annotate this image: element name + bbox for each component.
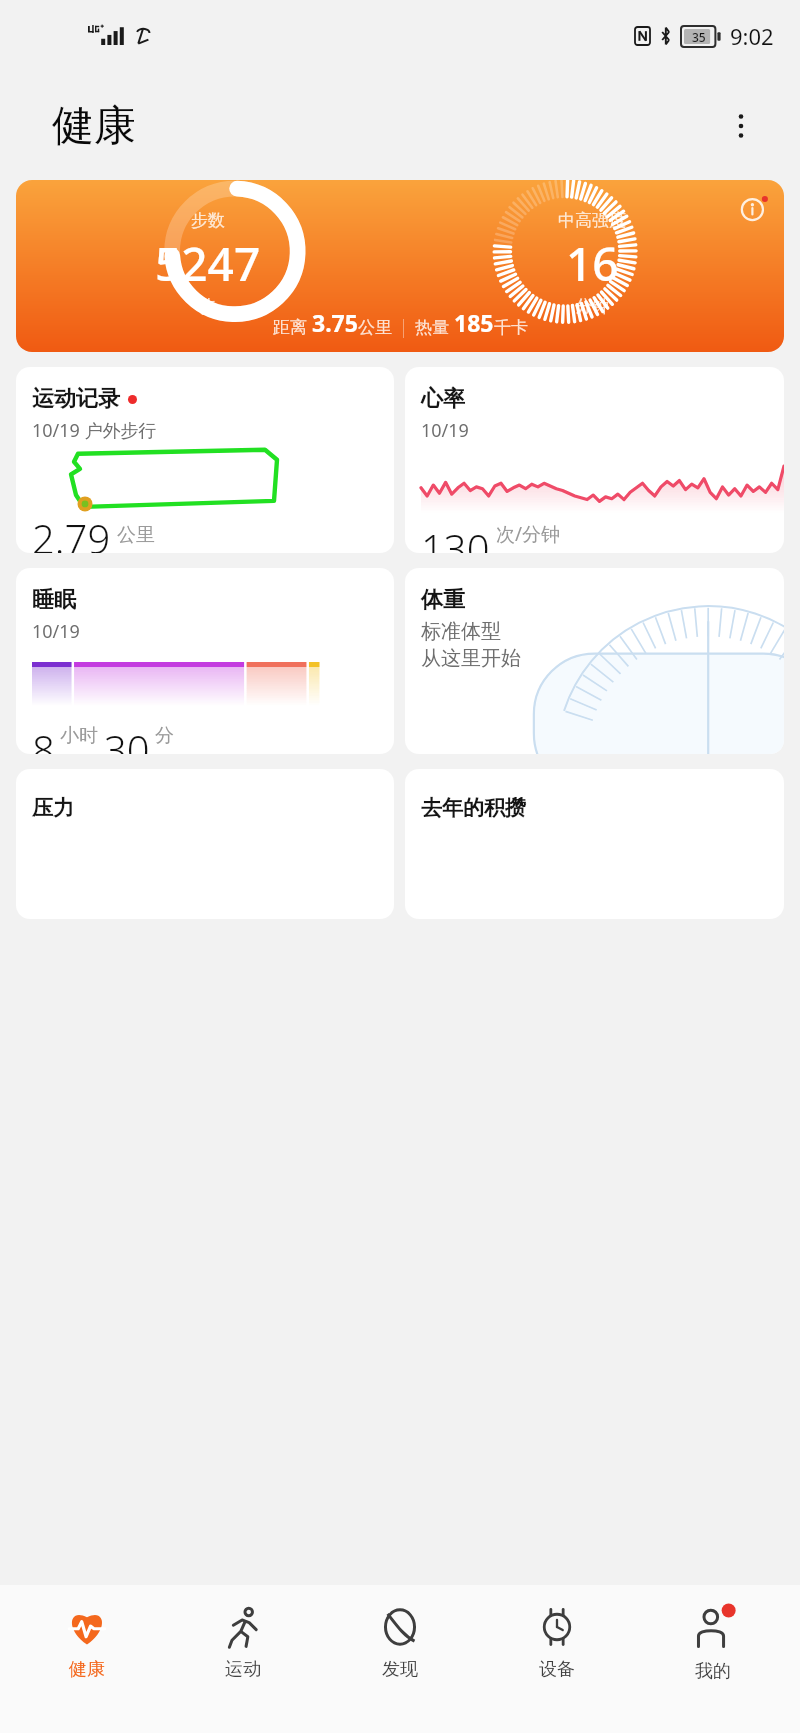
staticText: 千卡 [494,317,528,338]
button[interactable]: 压力 [16,769,394,919]
button[interactable]: 我的 [643,1605,783,1683]
button[interactable]: 运动记录 [16,367,394,553]
button[interactable]: 睡眠 [16,568,394,754]
staticText: 步 [200,296,217,317]
staticText: 3.75 [312,307,358,338]
button[interactable]: 去年的积攒 [405,769,784,919]
staticText: 去年的积攒 [421,795,526,821]
staticText: 10/19 [421,418,469,443]
staticText: 标准体型 [421,619,501,644]
staticText: 2.79 [32,511,111,553]
staticText: 分钟 [575,296,609,317]
button[interactable]: 步数 [16,180,784,352]
staticText: 分 [155,724,174,748]
staticText: 距离 [273,315,312,338]
button[interactable]: Info [734,188,774,228]
staticText: 热量 [415,315,454,338]
staticText: 从这里开始 [421,646,521,671]
staticText: 10/19 户外步行 [32,418,157,443]
staticText: 步数 [191,210,225,231]
button[interactable]: 运动 [173,1605,313,1681]
staticText: 发现 [382,1658,418,1681]
staticText: 16 [566,232,619,295]
staticText: 健康 [52,100,136,153]
staticText: 设备 [539,1658,575,1681]
staticText: 185 [454,307,494,338]
staticText: 公里 [117,523,155,547]
staticText: 体重 [421,586,465,614]
staticText: 35 [692,29,706,45]
staticText: 公里 [358,317,392,338]
staticText: 10/19 [32,619,80,644]
button[interactable]: 设备 [487,1605,627,1681]
button[interactable]: More options [718,103,764,149]
staticText: 5247 [155,232,261,295]
button[interactable]: 体重 [405,568,784,754]
staticText: 小时 [60,724,98,748]
staticText: 健康 [69,1658,105,1681]
staticText: 8 [32,722,55,754]
button[interactable]: 健康 [17,1605,157,1681]
staticText: 我的 [695,1660,731,1683]
staticText: 运动 [225,1658,261,1681]
staticText: 30 [104,722,150,754]
staticText: 130 [421,521,490,553]
button[interactable]: 发现 [330,1605,470,1681]
staticText: 中高强度 [558,210,626,231]
staticText: 压力 [32,795,74,821]
staticText: 次/分钟 [496,521,561,547]
staticText: 运动记录 [32,385,120,413]
staticText: 睡眠 [32,586,76,614]
staticText: 心率 [421,385,465,413]
staticText: 9:02 [730,21,774,51]
button[interactable]: 心率 [405,367,784,553]
